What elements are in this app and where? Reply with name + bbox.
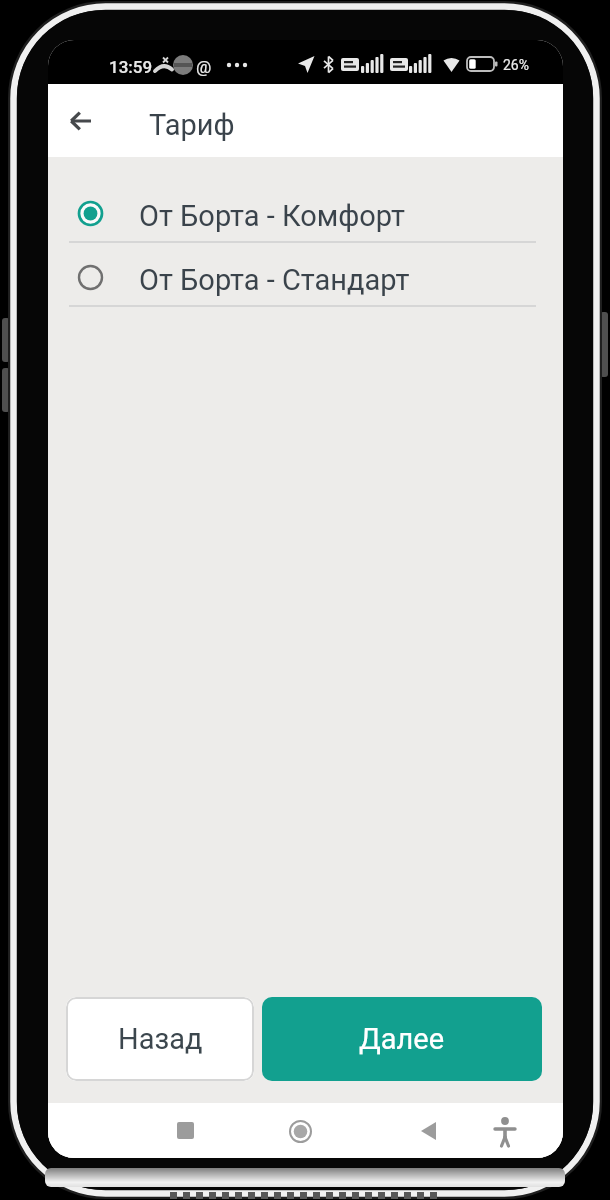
button[interactable] <box>489 1116 521 1148</box>
staticText: Тариф <box>149 108 235 142</box>
button[interactable] <box>288 1119 313 1144</box>
staticText: Далее <box>359 1022 445 1056</box>
button[interactable]: Назад <box>66 997 254 1081</box>
button[interactable]: От Борта - Стандарт <box>48 243 563 307</box>
staticText: 13:59 <box>109 57 153 77</box>
button[interactable] <box>177 1122 195 1140</box>
button[interactable] <box>64 104 98 138</box>
staticText: Назад <box>118 1022 203 1056</box>
staticText: @ <box>196 57 212 77</box>
staticText: 26% <box>503 57 529 73</box>
button[interactable]: Далее <box>262 997 542 1081</box>
staticText: От Борта - Стандарт <box>139 263 410 297</box>
staticText: От Борта - Комфорт <box>139 199 405 233</box>
button[interactable]: От Борта - Комфорт <box>48 179 563 243</box>
button[interactable] <box>421 1122 437 1140</box>
